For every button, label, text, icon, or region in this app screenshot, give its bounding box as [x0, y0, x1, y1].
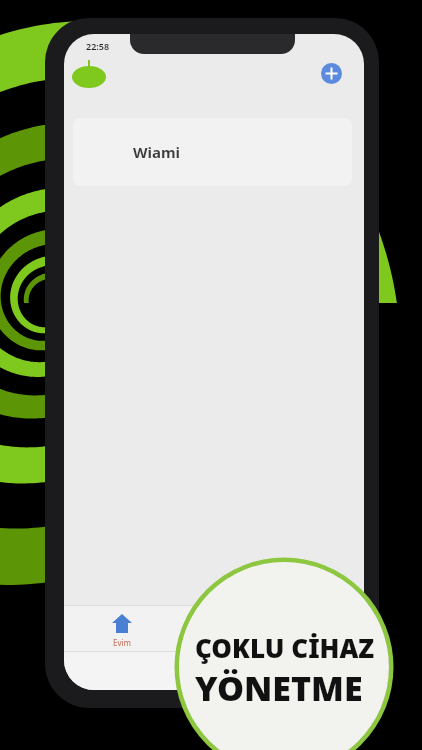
staticText: Evim	[113, 637, 132, 648]
staticText: ÇOKLU CİHAZ	[195, 630, 375, 665]
staticText: YÖNETME	[195, 665, 363, 711]
button[interactable]: Evim	[92, 606, 152, 648]
button[interactable]: Wiami	[73, 118, 352, 186]
button[interactable]: Add device	[321, 63, 342, 84]
staticText: 22:58	[86, 40, 110, 52]
staticText: Wiami	[133, 142, 181, 162]
